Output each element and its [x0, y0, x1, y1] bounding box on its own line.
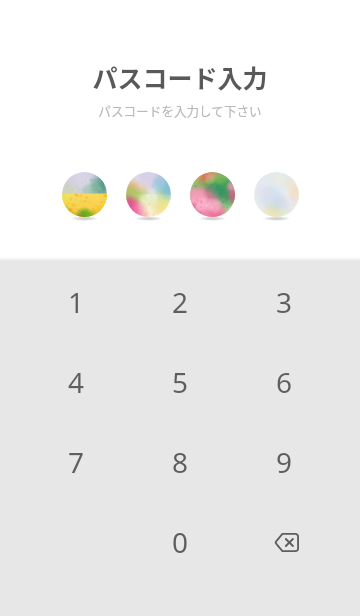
staticText: 6 [276, 363, 293, 401]
staticText: 1 [68, 283, 85, 321]
button[interactable]: 9 [236, 424, 332, 500]
staticText: 8 [172, 443, 189, 481]
staticText: 7 [68, 443, 85, 481]
button[interactable]: Watercolour theme 3 [190, 172, 235, 228]
button[interactable]: 5 [132, 344, 228, 420]
button[interactable]: Watercolour theme 1 [62, 172, 107, 228]
button[interactable]: Delete [238, 504, 334, 580]
button[interactable]: 8 [132, 424, 228, 500]
button[interactable]: 1 [28, 264, 124, 340]
staticText: パスコードを入力して下さい [98, 101, 262, 119]
button[interactable]: Watercolour theme 2 [126, 172, 171, 228]
staticText: パスコード入力 [92, 59, 268, 95]
staticText: 0 [172, 523, 189, 561]
button[interactable]: 0 [132, 504, 228, 580]
staticText: 3 [276, 283, 293, 321]
staticText: 4 [68, 363, 85, 401]
button[interactable]: 2 [132, 264, 228, 340]
button[interactable]: Watercolour theme 4 [254, 172, 299, 228]
button[interactable]: 3 [236, 264, 332, 340]
staticText: 5 [172, 363, 189, 401]
staticText: 2 [172, 283, 189, 321]
staticText: 9 [276, 443, 293, 481]
button[interactable]: 6 [236, 344, 332, 420]
button[interactable]: 7 [28, 424, 124, 500]
button[interactable]: 4 [28, 344, 124, 420]
